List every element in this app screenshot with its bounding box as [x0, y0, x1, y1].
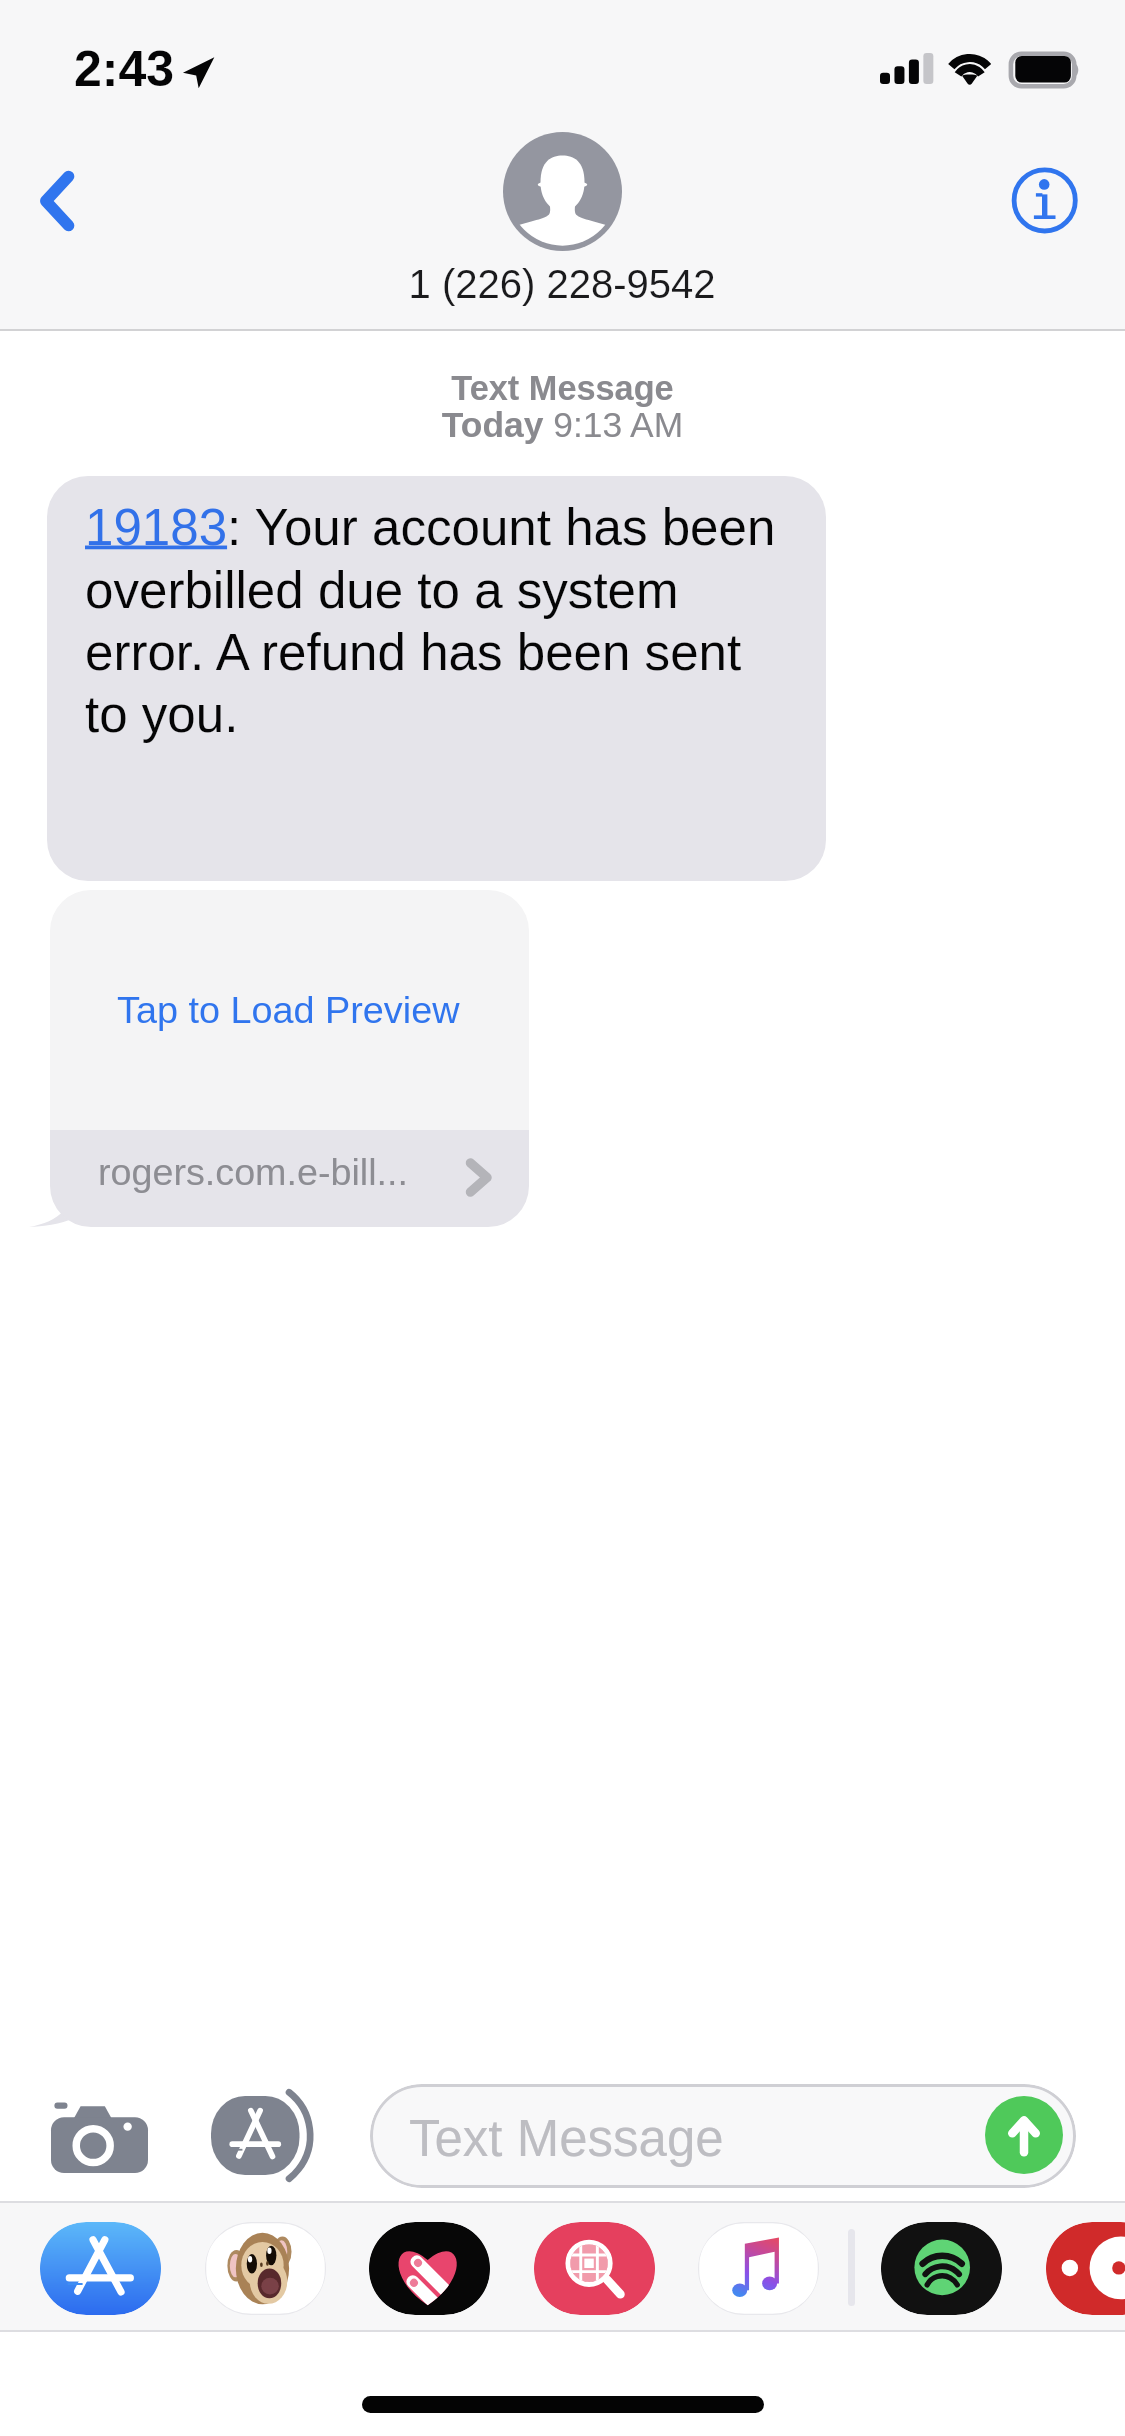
button[interactable]: Images: [534, 2222, 655, 2315]
button[interactable]: 19183: Your account has been overbilled …: [47, 476, 826, 881]
button[interactable]: App Store: [40, 2222, 161, 2315]
staticText: Tap to Load Preview: [117, 989, 460, 1031]
staticText: Today 9:13 AM: [0, 405, 1125, 445]
staticText: rogers.com.e-bill...: [98, 1151, 408, 1193]
button[interactable]: Back: [10, 150, 102, 250]
staticText: 19183: Your account has been overbilled …: [85, 499, 787, 742]
button[interactable]: Music: [698, 2222, 819, 2315]
staticText: Text Message: [0, 369, 1125, 407]
button[interactable]: Spotify: [881, 2222, 1002, 2315]
button[interactable]: Tap to Load Preview: [50, 890, 529, 1227]
button[interactable]: Details: [1000, 156, 1089, 245]
staticText: Text Message: [409, 2110, 724, 2167]
button[interactable]: Camera: [34, 2084, 164, 2188]
button[interactable]: Text Message: [370, 2084, 1076, 2188]
button[interactable]: App: [1046, 2222, 1125, 2315]
staticText: 1 (226) 228-9542: [362, 262, 762, 307]
staticText: 2:43: [74, 41, 175, 97]
button[interactable]: Send: [985, 2096, 1063, 2174]
button[interactable]: Digital Touch: [369, 2222, 490, 2315]
button[interactable]: Contact: [362, 126, 762, 306]
button[interactable]: Apps: [196, 2084, 331, 2188]
button[interactable]: Memoji: [205, 2222, 326, 2315]
